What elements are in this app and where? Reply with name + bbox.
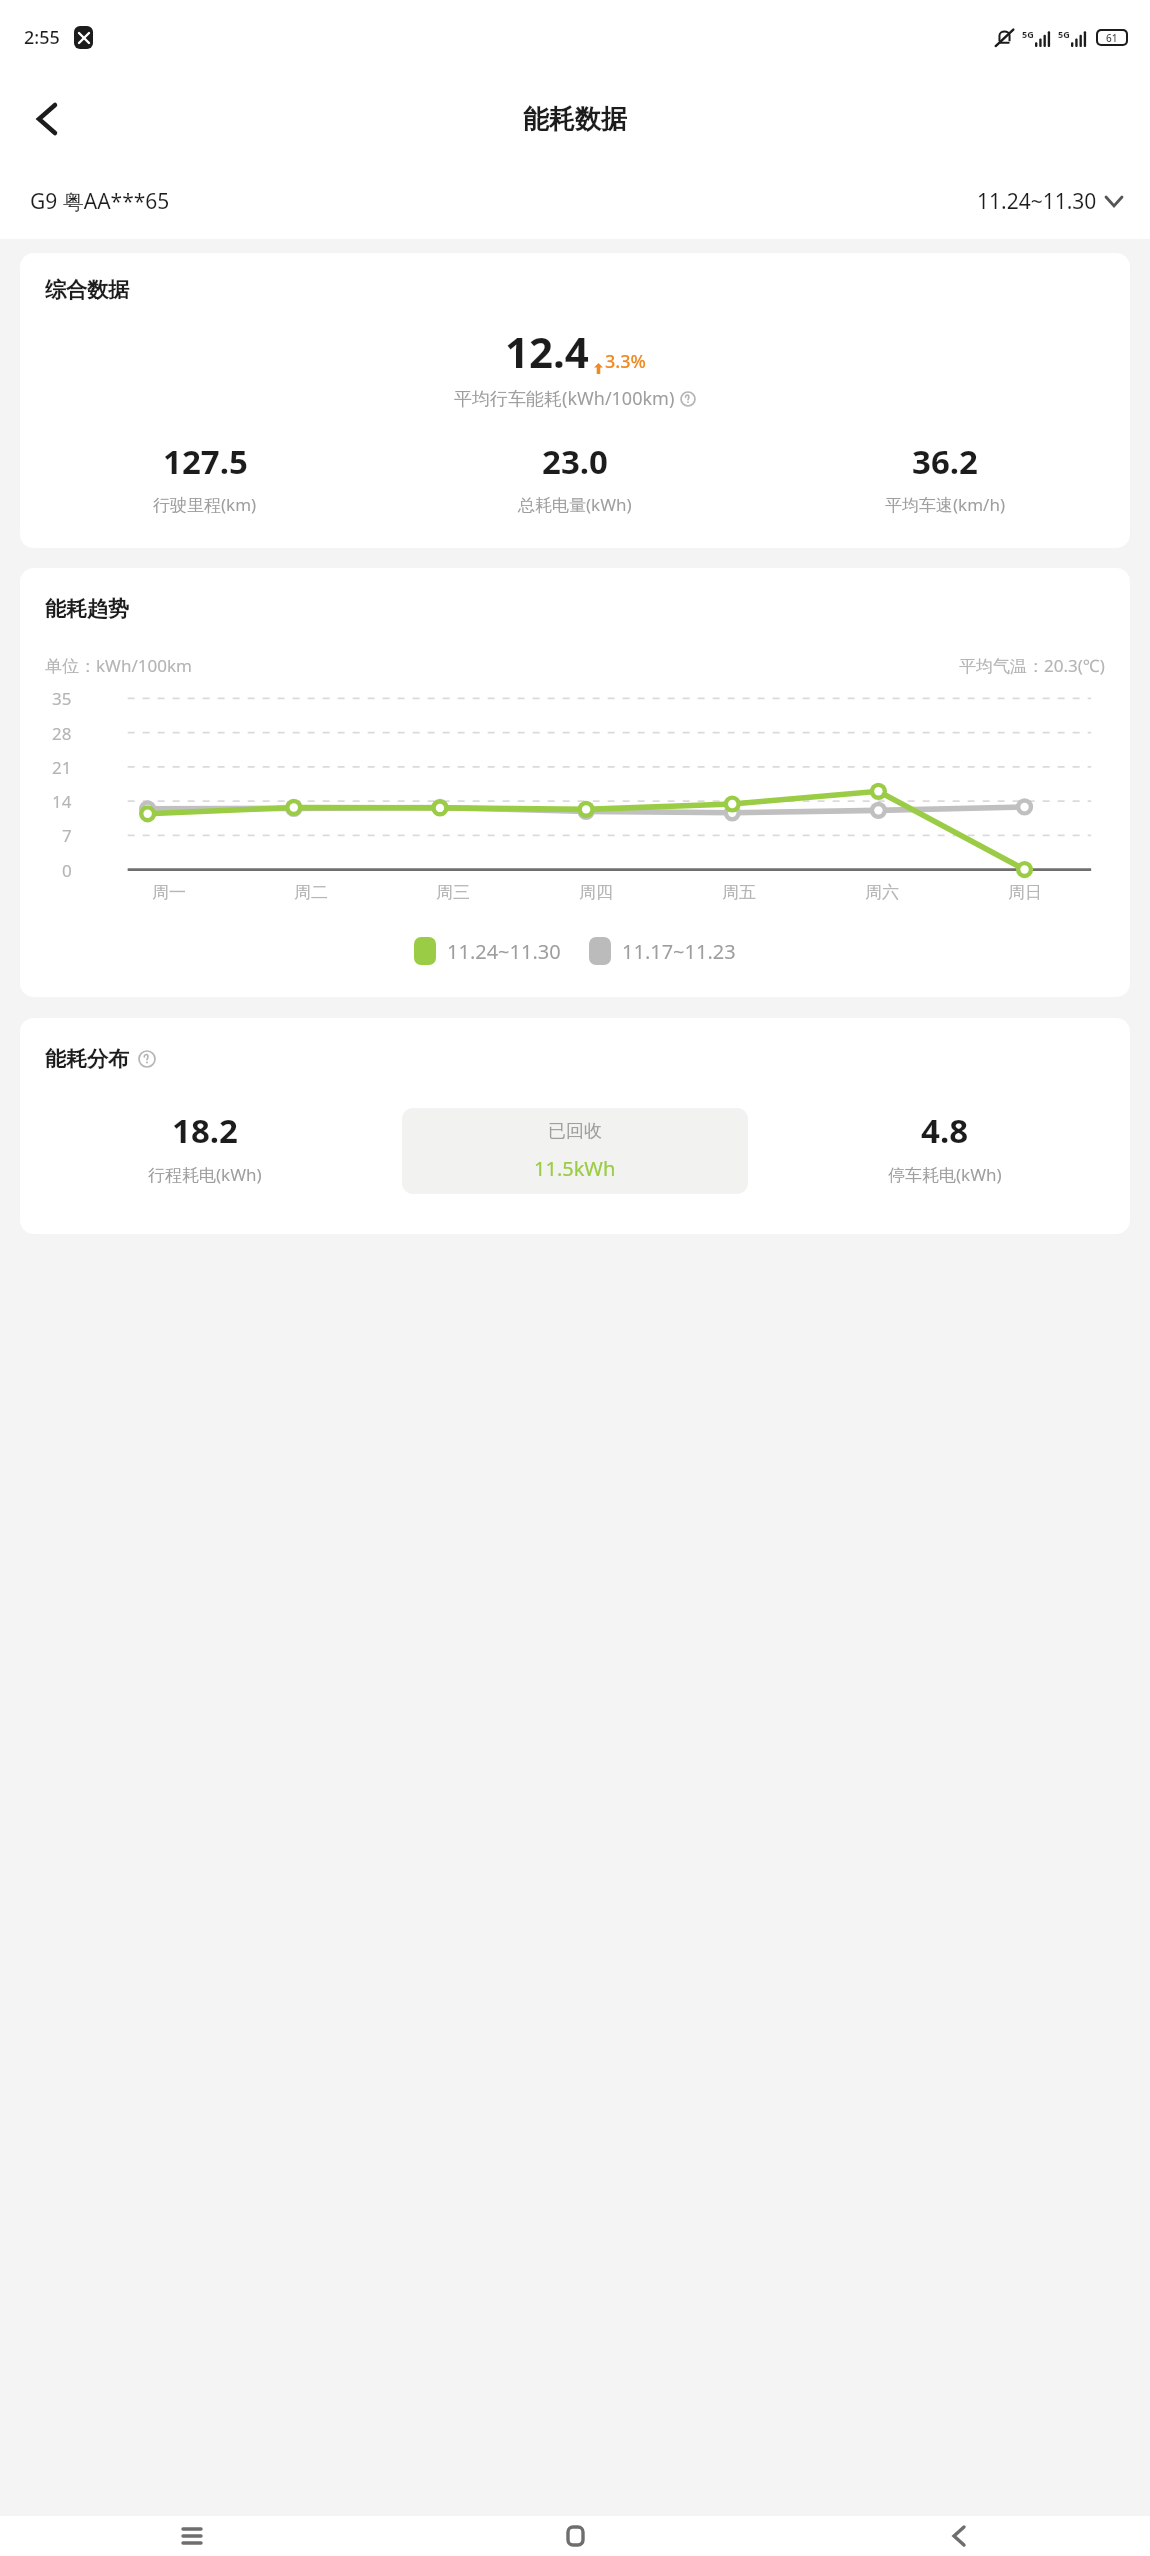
staticText: 0 bbox=[62, 859, 72, 882]
staticText: 周四 bbox=[579, 882, 613, 903]
staticText: 2:55 bbox=[24, 25, 60, 50]
staticText: 5G bbox=[1022, 28, 1034, 40]
button[interactable]: Back bbox=[767, 2516, 1150, 2556]
staticText: 能耗趋势 bbox=[45, 596, 129, 622]
staticText: 已回收 bbox=[548, 1120, 602, 1143]
staticText: 单位：kWh/100km bbox=[45, 654, 192, 677]
button[interactable]: Back bbox=[16, 88, 78, 150]
staticText: 23.0 bbox=[542, 439, 608, 484]
staticText: 11.24~11.30 bbox=[447, 938, 561, 965]
staticText: 61 bbox=[1106, 31, 1118, 44]
staticText: 36.2 bbox=[912, 439, 978, 484]
staticText: 18.2 bbox=[172, 1108, 238, 1153]
staticText: 4.8 bbox=[921, 1108, 969, 1153]
staticText: 35 bbox=[52, 687, 72, 710]
staticText: 11.5kWh bbox=[534, 1155, 616, 1182]
staticText: 28 bbox=[52, 722, 72, 745]
staticText: 21 bbox=[52, 756, 72, 779]
staticText: 平均气温：20.3(℃) bbox=[959, 654, 1105, 677]
staticText: 总耗电量(kWh) bbox=[518, 493, 632, 516]
staticText: 周六 bbox=[865, 882, 899, 903]
staticText: 停车耗电(kWh) bbox=[888, 1163, 1002, 1186]
staticText: 平均车速(km/h) bbox=[885, 493, 1006, 516]
staticText: 周一 bbox=[152, 882, 186, 903]
button[interactable]: 11.24~11.30 bbox=[971, 181, 1128, 222]
staticText: 3.3% bbox=[605, 349, 646, 374]
staticText: 12.4 bbox=[505, 323, 589, 380]
staticText: 127.5 bbox=[163, 439, 248, 484]
staticText: 行驶里程(km) bbox=[153, 493, 257, 516]
staticText: 周二 bbox=[294, 882, 328, 903]
staticText: 周三 bbox=[436, 882, 470, 903]
staticText: 11.17~11.23 bbox=[622, 938, 736, 965]
button[interactable]: Recent apps bbox=[0, 2516, 384, 2556]
staticText: 5G bbox=[1058, 28, 1070, 40]
staticText: 能耗分布 bbox=[45, 1046, 129, 1072]
button[interactable]: Home bbox=[384, 2516, 767, 2556]
staticText: 行程耗电(kWh) bbox=[148, 1163, 262, 1186]
staticText: G9 粤AA***65 bbox=[30, 187, 170, 216]
staticText: 平均行车能耗(kWh/100km) bbox=[454, 386, 675, 411]
staticText: 7 bbox=[62, 824, 72, 847]
staticText: 周日 bbox=[1008, 882, 1042, 903]
staticText: 11.24~11.30 bbox=[977, 187, 1097, 216]
staticText: 14 bbox=[52, 790, 72, 813]
staticText: 能耗数据 bbox=[523, 103, 627, 136]
staticText: 周五 bbox=[722, 882, 756, 903]
staticText: 综合数据 bbox=[45, 277, 129, 303]
